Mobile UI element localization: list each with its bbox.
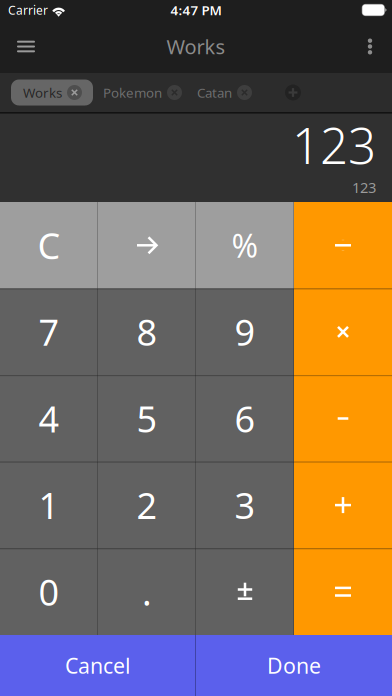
button[interactable] bbox=[196, 548, 294, 635]
button[interactable]: 8 bbox=[98, 289, 196, 375]
button[interactable] bbox=[98, 202, 196, 289]
staticText: 4 bbox=[38, 395, 59, 442]
button[interactable]: % bbox=[196, 202, 294, 289]
staticText: 123 bbox=[292, 112, 376, 177]
button[interactable]: Done bbox=[196, 635, 392, 696]
staticText: 3 bbox=[234, 481, 255, 529]
staticText: 7 bbox=[38, 308, 59, 356]
staticText: Done bbox=[267, 651, 321, 680]
staticText: 6 bbox=[234, 395, 255, 442]
button[interactable] bbox=[294, 202, 392, 289]
button[interactable]: . bbox=[98, 548, 196, 635]
button[interactable]: 6 bbox=[196, 375, 294, 462]
button[interactable]: 0 bbox=[0, 548, 98, 635]
button[interactable]: Pokemon bbox=[98, 79, 187, 105]
staticText: Cancel bbox=[65, 651, 131, 680]
button[interactable]: Catan bbox=[192, 79, 257, 105]
staticText: 9 bbox=[234, 308, 255, 356]
button[interactable]: Cancel bbox=[0, 635, 196, 696]
staticText: C bbox=[37, 221, 60, 269]
staticText: 123 bbox=[352, 177, 376, 197]
button[interactable]: Menu bbox=[0, 20, 52, 72]
button[interactable] bbox=[294, 462, 392, 548]
button[interactable]: 5 bbox=[98, 375, 196, 462]
staticText: 0 bbox=[38, 568, 59, 616]
button[interactable]: C bbox=[0, 202, 98, 289]
button[interactable]: 7 bbox=[0, 289, 98, 375]
staticText: 4:47 PM bbox=[170, 1, 221, 19]
staticText: 2 bbox=[136, 481, 157, 529]
staticText: Carrier bbox=[8, 2, 48, 18]
button[interactable]: Works bbox=[11, 79, 93, 105]
button[interactable]: New tab bbox=[262, 77, 308, 107]
button[interactable]: 2 bbox=[98, 462, 196, 548]
button[interactable]: 1 bbox=[0, 462, 98, 548]
button[interactable]: 4 bbox=[0, 375, 98, 462]
staticText: Pokemon bbox=[103, 84, 162, 101]
staticText: Works bbox=[166, 33, 225, 60]
staticText: . bbox=[142, 568, 152, 616]
button[interactable] bbox=[294, 289, 392, 375]
button[interactable]: 9 bbox=[196, 289, 294, 375]
staticText: % bbox=[231, 224, 258, 267]
button[interactable] bbox=[294, 375, 392, 462]
button[interactable] bbox=[294, 548, 392, 635]
button[interactable]: 3 bbox=[196, 462, 294, 548]
staticText: 5 bbox=[136, 395, 157, 442]
button[interactable]: More options bbox=[348, 20, 392, 72]
staticText: Works bbox=[23, 84, 62, 101]
staticText: 8 bbox=[136, 308, 157, 356]
staticText: Catan bbox=[197, 84, 232, 101]
staticText: 1 bbox=[38, 481, 59, 529]
